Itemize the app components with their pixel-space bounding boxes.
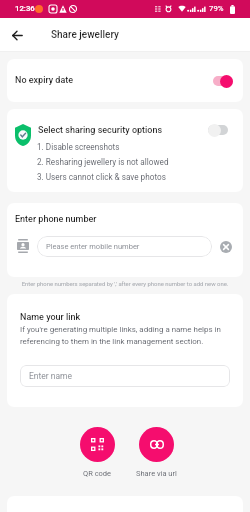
staticText: 79%: [209, 4, 224, 13]
staticText: If you're generating multiple links, add…: [20, 325, 235, 346]
button[interactable]: Switch off: [208, 123, 228, 137]
staticText: Enter phone numbers separated by ',' aft…: [0, 281, 250, 288]
staticText: 12:36: [15, 4, 35, 13]
button[interactable]: QR code: [80, 427, 115, 478]
staticText: Name your link: [20, 312, 81, 323]
button[interactable]: Switch on: [213, 74, 233, 88]
staticText: Share jewellery: [51, 29, 119, 41]
staticText: Enter phone number: [15, 214, 97, 225]
staticText: Please enter mobile number: [46, 242, 140, 251]
button[interactable]: Share via url: [136, 427, 177, 478]
button[interactable]: Back: [5, 23, 29, 47]
staticText: No expiry date: [15, 75, 74, 86]
staticText: 3. Users cannot click & save photos: [37, 172, 166, 182]
staticText: Enter name: [29, 371, 73, 381]
button[interactable]: Enter name: [20, 365, 230, 387]
staticText: Select sharing security options: [38, 125, 163, 136]
staticText: 1. Disable screenshots: [37, 142, 120, 152]
staticText: 2. Resharing jewellery is not allowed: [37, 157, 169, 167]
staticText: Share via url: [136, 469, 177, 478]
button[interactable]: Clear phone number: [220, 241, 232, 253]
button[interactable]: Please enter mobile number: [37, 236, 212, 257]
staticText: QR code: [83, 469, 112, 478]
